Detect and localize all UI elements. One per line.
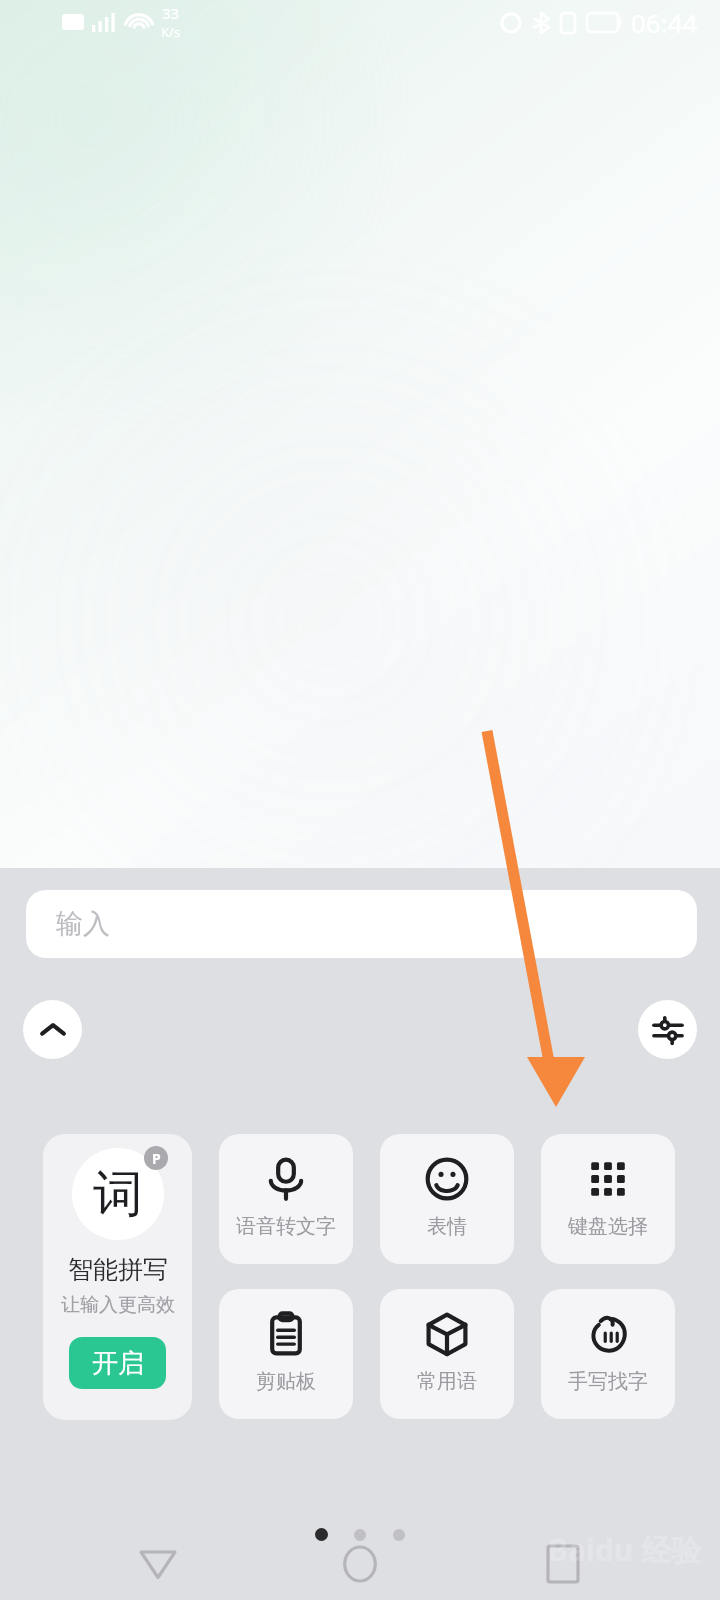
staticText: 表情 <box>427 1214 467 1239</box>
button[interactable]: Home <box>315 1528 405 1600</box>
button[interactable]: 剪贴板 <box>219 1289 353 1419</box>
button[interactable]: 语音转文字 <box>219 1134 353 1264</box>
button[interactable]: Back <box>113 1528 203 1600</box>
staticText: 开启 <box>92 1347 144 1380</box>
button[interactable]: 表情 <box>380 1134 514 1264</box>
staticText: Baidu 经验 <box>548 1529 702 1570</box>
button[interactable]: 键盘选择 <box>541 1134 675 1264</box>
staticText: 输入 <box>56 907 110 941</box>
button[interactable]: Collapse <box>23 1000 82 1059</box>
staticText: 让输入更高效 <box>61 1293 175 1317</box>
staticText: 剪贴板 <box>256 1369 316 1394</box>
button[interactable]: Recents <box>518 1528 608 1600</box>
button[interactable]: 词 <box>43 1134 192 1420</box>
button[interactable]: 常用语 <box>380 1289 514 1419</box>
staticText: 06:44 <box>631 5 698 40</box>
button[interactable]: 开启 <box>69 1337 166 1389</box>
button[interactable]: 输入 <box>26 890 697 958</box>
staticText: 语音转文字 <box>236 1214 336 1239</box>
staticText: K/s <box>161 23 181 41</box>
button[interactable]: Settings <box>638 1000 697 1059</box>
button[interactable]: 手写找字 <box>541 1289 675 1419</box>
staticText: 常用语 <box>417 1369 477 1394</box>
staticText: 手写找字 <box>568 1369 648 1394</box>
staticText: 键盘选择 <box>568 1214 648 1239</box>
staticText: 33 <box>162 3 180 23</box>
staticText: P <box>152 1149 161 1168</box>
staticText: 智能拼写 <box>68 1254 168 1285</box>
staticText: 词 <box>93 1163 143 1226</box>
